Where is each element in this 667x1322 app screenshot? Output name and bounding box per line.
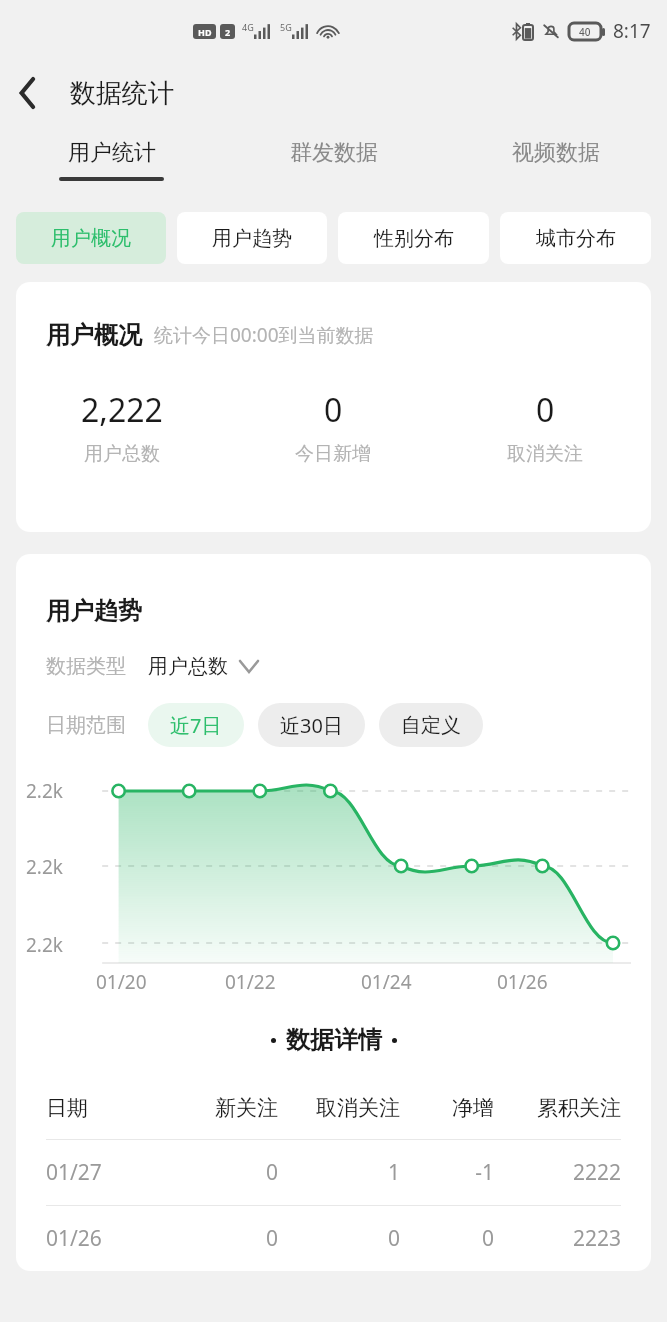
button[interactable]: 群发数据 [223, 124, 445, 196]
staticText: 0 [167, 1158, 278, 1187]
staticText: 5G [280, 21, 292, 33]
staticText: 数据类型 [46, 654, 126, 679]
staticText: 新关注 [167, 1095, 278, 1121]
staticText: 2 [225, 26, 231, 38]
button[interactable]: 近7日 [148, 703, 244, 747]
button[interactable]: 自定义 [379, 703, 483, 747]
button[interactable]: 用户总数 [148, 654, 258, 679]
staticText: 01/26 [497, 969, 548, 995]
staticText: 累积关注 [494, 1095, 621, 1121]
staticText: 01/20 [96, 969, 147, 995]
staticText: 0 [324, 388, 343, 432]
staticText: 净增 [400, 1095, 494, 1121]
staticText: 性别分布 [374, 226, 454, 251]
staticText: 用户趋势 [212, 226, 292, 251]
staticText: 01/27 [46, 1158, 167, 1187]
staticText: 40 [579, 25, 591, 39]
staticText: 0 [167, 1224, 278, 1253]
staticText: 近30日 [280, 712, 343, 739]
staticText: 视频数据 [512, 139, 600, 167]
staticText: 2.2k [26, 778, 63, 804]
staticText: 8:17 [613, 18, 651, 44]
staticText: 数据统计 [70, 77, 174, 110]
staticText: 城市分布 [536, 226, 616, 251]
button[interactable]: 用户趋势 [177, 212, 327, 264]
staticText: 4G [242, 21, 254, 33]
staticText: 数据详情 [286, 1025, 382, 1055]
button[interactable]: 性别分布 [338, 212, 489, 264]
staticText: 01/24 [361, 969, 412, 995]
button[interactable]: 用户统计 [0, 124, 223, 196]
staticText: -1 [400, 1158, 494, 1187]
staticText: 用户总数 [148, 654, 228, 679]
button[interactable]: 近30日 [258, 703, 365, 747]
staticText: 取消关注 [507, 442, 583, 466]
staticText: 群发数据 [290, 139, 378, 167]
staticText: 0 [278, 1224, 400, 1253]
staticText: 用户总数 [84, 442, 160, 466]
staticText: 今日新增 [295, 442, 371, 466]
staticText: 日期范围 [46, 713, 126, 738]
staticText: 2223 [494, 1224, 621, 1253]
staticText: 0 [400, 1224, 494, 1253]
staticText: 用户概况 [46, 320, 142, 350]
staticText: HD [198, 26, 212, 38]
staticText: 01/22 [225, 969, 276, 995]
staticText: 近7日 [170, 712, 222, 739]
button[interactable]: Back [0, 65, 56, 121]
button[interactable]: 用户概况 [16, 212, 166, 264]
staticText: 0 [536, 388, 555, 432]
staticText: 用户概况 [51, 226, 131, 251]
staticText: 用户趋势 [46, 596, 142, 626]
staticText: 统计今日00:00到当前数据 [154, 322, 374, 348]
staticText: 2,222 [81, 388, 163, 432]
staticText: 01/26 [46, 1224, 167, 1253]
staticText: 用户统计 [68, 139, 156, 167]
staticText: 日期 [46, 1095, 167, 1121]
staticText: 取消关注 [278, 1095, 400, 1121]
staticText: 自定义 [401, 713, 461, 738]
staticText: 2222 [494, 1158, 621, 1187]
staticText: 1 [278, 1158, 400, 1187]
button[interactable]: 城市分布 [500, 212, 651, 264]
staticText: 2.2k [26, 854, 63, 880]
staticText: 2.2k [26, 932, 63, 958]
button[interactable]: 视频数据 [445, 124, 667, 196]
